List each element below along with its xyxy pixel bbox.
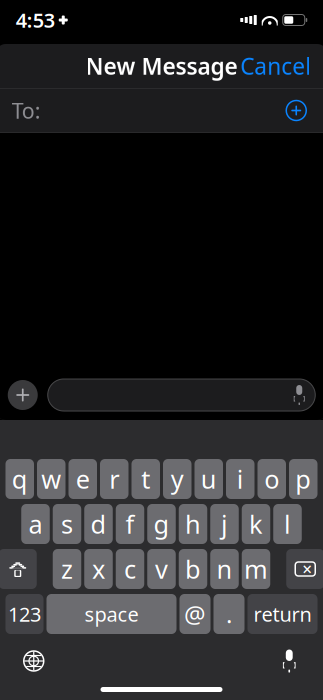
staticText: k <box>249 507 263 541</box>
staticText: o <box>264 462 279 496</box>
staticText: . <box>226 598 232 630</box>
button[interactable]: 123 <box>5 594 43 634</box>
staticText: e <box>76 462 90 496</box>
staticText: b <box>185 552 201 586</box>
staticText: l <box>284 507 291 541</box>
staticText: h <box>185 507 201 541</box>
button[interactable]: Change keyboard <box>12 641 56 681</box>
button[interactable]: q <box>5 459 34 499</box>
button[interactable]: z <box>53 549 81 589</box>
staticText: Cancel <box>240 51 311 81</box>
staticText: space <box>84 601 138 627</box>
button[interactable]: Delete <box>286 549 323 589</box>
button[interactable]: w <box>37 459 65 499</box>
staticText: z <box>61 552 73 586</box>
button[interactable]: Cancel <box>224 41 323 91</box>
staticText: To: <box>12 96 41 125</box>
staticText: q <box>12 462 28 496</box>
button[interactable]: b <box>179 549 207 589</box>
button[interactable]: e <box>68 459 97 499</box>
staticText: c <box>124 552 136 586</box>
button[interactable]: l <box>273 504 302 544</box>
button[interactable]: p <box>289 459 317 499</box>
staticText: 4:53 <box>16 7 55 33</box>
button[interactable]: u <box>194 459 223 499</box>
staticText: i <box>237 462 244 496</box>
staticText: n <box>216 552 232 586</box>
staticText: r <box>109 462 119 496</box>
button[interactable]: Dictation <box>267 641 311 681</box>
button[interactable]: r <box>100 459 128 499</box>
button[interactable]: h <box>179 504 207 544</box>
button[interactable]: i <box>226 459 254 499</box>
staticText: s <box>61 507 73 541</box>
staticText: return <box>253 601 311 627</box>
button[interactable]: . <box>213 594 244 634</box>
button[interactable]: c <box>116 549 144 589</box>
staticText: a <box>28 507 42 541</box>
button[interactable]: j <box>210 504 239 544</box>
staticText: j <box>221 507 228 541</box>
button[interactable]: @ <box>179 594 210 634</box>
button[interactable]: y <box>163 459 191 499</box>
button[interactable]: t <box>131 459 160 499</box>
staticText: 123 <box>8 601 41 627</box>
button[interactable]: return <box>247 594 317 634</box>
button[interactable]: x <box>84 549 113 589</box>
staticText: New Message <box>85 51 237 81</box>
button[interactable]: m <box>242 549 270 589</box>
staticText: m <box>244 552 268 586</box>
staticText: t <box>141 462 150 496</box>
staticText: w <box>41 462 61 496</box>
button[interactable]: o <box>257 459 286 499</box>
staticText: @ <box>184 598 206 630</box>
button[interactable]: Shift <box>0 549 37 589</box>
button[interactable]: f <box>116 504 144 544</box>
button[interactable]: k <box>242 504 270 544</box>
button[interactable]: Add attachment <box>6 378 40 412</box>
button[interactable]: a <box>21 504 50 544</box>
button[interactable]: d <box>84 504 113 544</box>
staticText: × <box>302 557 312 580</box>
staticText: v <box>155 552 168 586</box>
staticText: u <box>201 462 217 496</box>
button[interactable]: n <box>210 549 239 589</box>
staticText: p <box>295 462 311 496</box>
staticText: f <box>125 507 134 541</box>
button[interactable]: g <box>147 504 176 544</box>
button[interactable]: v <box>147 549 176 589</box>
button[interactable]: Add contact <box>279 93 313 127</box>
staticText: d <box>90 507 106 541</box>
button[interactable]: space <box>46 594 176 634</box>
staticText: y <box>171 462 184 496</box>
button[interactable]: Message field <box>48 379 315 411</box>
staticText: g <box>153 507 169 541</box>
staticText: x <box>92 552 105 586</box>
button[interactable]: s <box>53 504 81 544</box>
